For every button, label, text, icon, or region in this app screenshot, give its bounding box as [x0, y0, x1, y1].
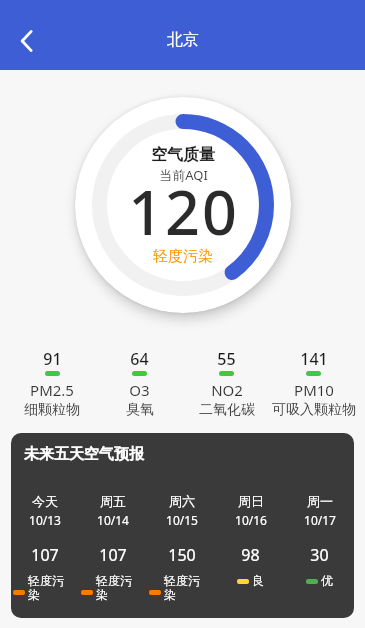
- staticText: 107: [31, 544, 59, 566]
- staticText: 未来五天空气预报: [24, 445, 144, 464]
- staticText: 轻度污染: [28, 573, 68, 603]
- staticText: 107: [99, 544, 127, 566]
- staticText: 臭氧: [126, 401, 154, 419]
- staticText: 10/15: [166, 512, 198, 528]
- button[interactable]: 55: [183, 348, 270, 419]
- staticText: 北京: [167, 30, 199, 50]
- button[interactable]: 141: [270, 348, 357, 419]
- staticText: 今天: [32, 493, 58, 509]
- staticText: O3: [129, 380, 150, 400]
- staticText: 周日: [238, 493, 264, 509]
- staticText: 轻度污染: [164, 573, 204, 603]
- staticText: 周五: [100, 493, 126, 509]
- staticText: 空气质量: [151, 145, 215, 165]
- staticText: 周六: [169, 493, 195, 509]
- button[interactable]: 轻度污染: [11, 573, 79, 603]
- staticText: 周一: [307, 493, 333, 509]
- staticText: PM10: [294, 380, 334, 400]
- button[interactable]: 91: [8, 348, 96, 419]
- button[interactable]: 轻度污染: [79, 573, 147, 603]
- staticText: 可吸入颗粒物: [272, 401, 356, 419]
- staticText: 141: [300, 348, 328, 370]
- staticText: 120: [128, 170, 239, 253]
- button[interactable]: [12, 26, 42, 56]
- staticText: 64: [130, 348, 149, 370]
- staticText: 55: [217, 348, 236, 370]
- button[interactable]: 优: [285, 573, 354, 588]
- staticText: 二氧化碳: [199, 401, 255, 419]
- staticText: 轻度污染: [96, 573, 136, 603]
- button[interactable]: 轻度污染: [147, 573, 216, 603]
- staticText: 优: [321, 573, 333, 588]
- staticText: 150: [168, 544, 196, 566]
- staticText: PM2.5: [30, 380, 74, 400]
- staticText: 98: [241, 544, 260, 566]
- staticText: 10/16: [235, 512, 267, 528]
- staticText: 91: [43, 348, 62, 370]
- button[interactable]: 良: [216, 573, 285, 588]
- staticText: 30: [310, 544, 329, 566]
- staticText: 10/13: [29, 512, 61, 528]
- staticText: 细颗粒物: [24, 401, 80, 419]
- staticText: 10/14: [97, 512, 129, 528]
- staticText: 良: [252, 573, 264, 588]
- staticText: 当前AQI: [159, 166, 208, 184]
- staticText: 轻度污染: [153, 247, 213, 266]
- staticText: NO2: [211, 380, 243, 400]
- staticText: 10/17: [304, 512, 336, 528]
- button[interactable]: 64: [96, 348, 183, 419]
